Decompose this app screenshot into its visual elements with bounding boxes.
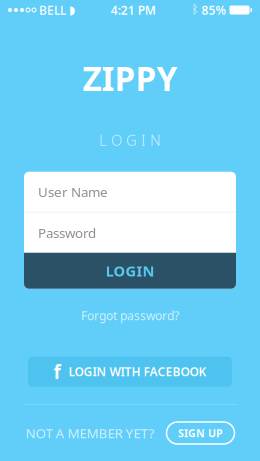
button[interactable]: SIGN UP <box>166 422 234 444</box>
button[interactable]: LOGIN <box>24 253 236 289</box>
staticText: NOT A MEMBER YET? <box>25 424 154 442</box>
button[interactable]: f <box>28 357 232 387</box>
staticText: f <box>53 359 60 384</box>
staticText: BELL <box>39 2 66 18</box>
staticText: 4:21 PM <box>111 2 156 18</box>
staticText: ZIPPY <box>82 56 177 100</box>
staticText: SIGN UP <box>178 426 223 440</box>
staticText: ◗ <box>69 3 75 17</box>
staticText: User Name <box>38 183 108 201</box>
staticText: LOGIN <box>105 261 154 280</box>
staticText: L O G I N <box>99 130 161 150</box>
button[interactable]: Forgot password? <box>71 303 189 329</box>
staticText: Forgot password? <box>81 308 179 324</box>
staticText: Password <box>38 224 96 242</box>
staticText: ᛒ <box>191 4 198 16</box>
staticText: LOGIN WITH FACEBOOK <box>68 364 206 380</box>
staticText: 85% <box>201 2 226 18</box>
